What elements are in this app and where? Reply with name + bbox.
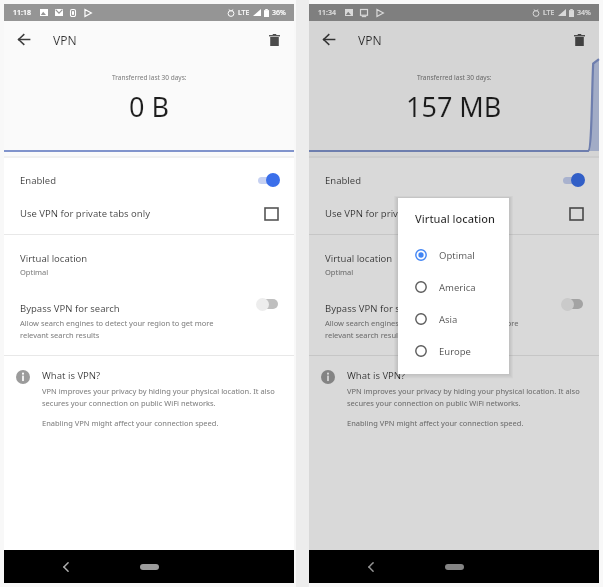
button[interactable]: Enabled (309, 158, 599, 202)
staticText: Virtual location (415, 211, 495, 226)
button[interactable]: Use VPN for private tabs only (309, 202, 599, 225)
button[interactable]: Bypass VPN for search (309, 302, 599, 341)
button[interactable]: America (398, 271, 509, 303)
staticText: 11:34 (318, 8, 336, 18)
staticText: Enabling VPN might affect your connectio… (42, 418, 219, 428)
staticText: Optimal (439, 249, 475, 262)
staticText: Bypass VPN for search (20, 302, 120, 315)
staticText: VPN improves your privacy by hiding your… (42, 386, 275, 409)
button[interactable]: Enabled toggle (258, 172, 280, 188)
button[interactable]: Back (358, 550, 384, 583)
button[interactable]: Virtual location (309, 252, 599, 277)
staticText: Use VPN for private tabs only (325, 207, 456, 220)
staticText: America (439, 281, 476, 294)
staticText: Virtual location (20, 252, 88, 265)
button[interactable]: Home (140, 564, 159, 570)
button[interactable]: Back (53, 550, 79, 583)
staticText: Virtual location (325, 252, 393, 265)
button[interactable]: Bypass VPN toggle (256, 296, 278, 312)
button[interactable]: Optimal (398, 239, 509, 271)
button[interactable]: Enabled toggle (563, 172, 585, 188)
staticText: Enabled (20, 174, 56, 187)
staticText: 34% (577, 8, 591, 18)
staticText: Europe (439, 345, 471, 358)
button[interactable]: Back (309, 21, 349, 58)
staticText: VPN (358, 32, 382, 48)
button[interactable]: Bypass VPN for search (4, 302, 294, 341)
staticText: Use VPN for private tabs only (20, 207, 151, 220)
staticText: 0 B (129, 88, 170, 125)
staticText: Enabling VPN might affect your connectio… (347, 418, 524, 428)
button[interactable]: Home (445, 564, 464, 570)
staticText: Transferred last 30 days: (112, 73, 187, 82)
staticText: Optimal (20, 267, 49, 277)
staticText: What is VPN? (347, 369, 406, 382)
button[interactable]: Europe (398, 335, 509, 367)
button[interactable]: Delete (254, 21, 294, 58)
staticText: What is VPN? (42, 369, 101, 382)
button[interactable]: Use VPN for private tabs only (4, 202, 294, 225)
staticText: Asia (439, 313, 458, 326)
button[interactable]: Use VPN for private tabs only checkbox (567, 205, 585, 223)
staticText: LTE (238, 8, 250, 18)
staticText: LTE (543, 8, 555, 18)
staticText: VPN (53, 32, 77, 48)
button[interactable]: Delete (559, 21, 599, 58)
staticText: 157 MB (406, 88, 502, 125)
button[interactable]: Use VPN for private tabs only checkbox (262, 205, 280, 223)
staticText: Bypass VPN for search (325, 302, 425, 315)
staticText: Allow search engines to detect your regi… (20, 318, 214, 341)
staticText: Transferred last 30 days: (417, 73, 492, 82)
button[interactable]: Back (4, 21, 44, 58)
button[interactable]: Virtual location (4, 252, 294, 277)
button[interactable]: Bypass VPN toggle (561, 296, 583, 312)
button[interactable]: Enabled (4, 158, 294, 202)
button[interactable]: Asia (398, 303, 509, 335)
staticText: Allow search engines to detect your regi… (325, 318, 519, 341)
staticText: VPN improves your privacy by hiding your… (347, 386, 580, 409)
staticText: 11:18 (13, 8, 31, 18)
staticText: Enabled (325, 174, 361, 187)
staticText: 36% (272, 8, 286, 18)
staticText: Optimal (325, 267, 354, 277)
